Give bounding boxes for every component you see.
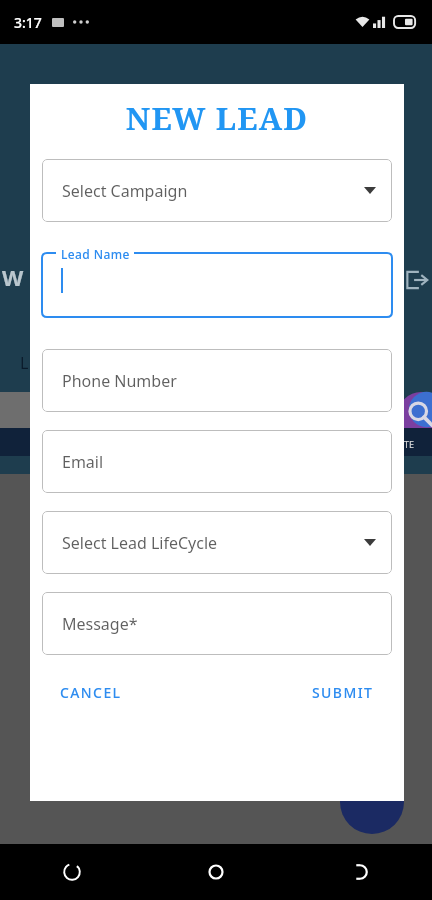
button[interactable]: Select Campaign	[42, 159, 392, 222]
button[interactable]: Message*	[42, 592, 392, 655]
staticText: Select Campaign	[62, 180, 188, 202]
staticText: CANCEL	[60, 683, 122, 702]
button[interactable]: Select Lead LifeCycle	[42, 511, 392, 574]
staticText: W	[2, 262, 24, 292]
staticText: 3:17	[14, 13, 42, 32]
button[interactable]: Back	[288, 844, 432, 900]
button[interactable]: Email	[42, 430, 392, 493]
staticText: Message*	[62, 613, 138, 635]
button[interactable]: Phone Number	[42, 349, 392, 412]
staticText: SUBMIT	[312, 683, 374, 702]
staticText: Email	[62, 451, 104, 473]
button[interactable]: SUBMIT	[308, 677, 378, 708]
staticText: Phone Number	[62, 370, 177, 392]
staticText: TE	[404, 438, 415, 450]
staticText: NEW LEAD	[30, 97, 404, 139]
button[interactable]: Home	[144, 844, 288, 900]
button[interactable]: CANCEL	[56, 677, 126, 708]
button[interactable]	[42, 241, 392, 317]
staticText: Lead Name	[61, 246, 130, 262]
button[interactable]: Recents	[0, 844, 144, 900]
staticText: Select Lead LifeCycle	[62, 532, 218, 554]
staticText: L	[20, 352, 29, 374]
